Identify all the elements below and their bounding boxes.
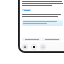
button[interactable]: More bbox=[40, 44, 46, 50]
button[interactable] bbox=[22, 38, 41, 41]
button[interactable]: Profile bbox=[22, 44, 28, 50]
button[interactable] bbox=[22, 20, 63, 26]
button[interactable]: Home bbox=[31, 44, 37, 50]
button[interactable] bbox=[42, 38, 61, 41]
button[interactable] bbox=[22, 9, 31, 11]
